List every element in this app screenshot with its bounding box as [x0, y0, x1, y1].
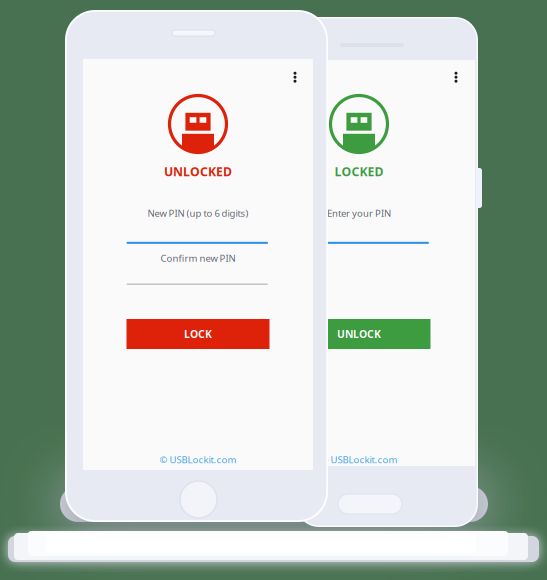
- staticText: LOCKED: [334, 163, 383, 180]
- button[interactable]: © USBLockit.com: [264, 452, 454, 466]
- button[interactable]: UNLOCK: [287, 319, 430, 349]
- staticText: LOCK: [184, 327, 212, 341]
- button[interactable]: LOCK: [126, 319, 269, 349]
- button[interactable]: More options: [262, 277, 284, 303]
- button[interactable]: © USBLockit.com: [103, 452, 293, 466]
- staticText: UNLOCKED: [164, 163, 232, 180]
- staticText: © USBLockit.com: [159, 453, 236, 466]
- staticText: New PIN (up to 6 digits): [147, 206, 248, 219]
- staticText: © USBLockit.com: [320, 453, 397, 466]
- staticText: Confirm new PIN: [160, 251, 235, 264]
- staticText: Enter your PIN: [327, 206, 391, 219]
- staticText: UNLOCK: [337, 327, 381, 341]
- button[interactable]: More options: [262, 277, 284, 303]
